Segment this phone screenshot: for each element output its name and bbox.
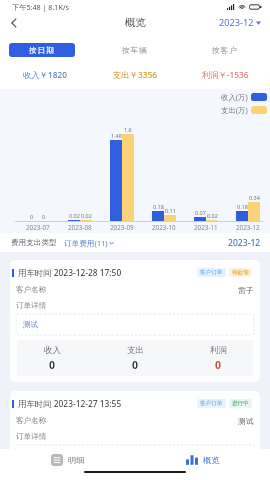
button[interactable]: 按日期 xyxy=(9,43,75,57)
staticText: 0.18 xyxy=(237,203,248,210)
staticText: 2023-10 xyxy=(152,223,176,232)
button[interactable]: Back xyxy=(0,14,27,31)
button[interactable]: 按车辆 xyxy=(90,43,180,57)
staticText: 0 xyxy=(42,213,46,220)
staticText: 按车辆 xyxy=(122,45,148,55)
staticText: 0 xyxy=(132,358,139,372)
staticText: 收入 xyxy=(44,345,61,356)
staticText: 订单费用(11) xyxy=(64,238,108,248)
staticText: 支出 xyxy=(127,345,144,356)
staticText: 待处理 xyxy=(232,269,249,276)
staticText: 0.07 xyxy=(195,209,206,216)
staticText: 2023-12 xyxy=(219,16,254,29)
button[interactable]: 明细 xyxy=(0,454,135,466)
staticText: 0 xyxy=(215,358,222,372)
button[interactable]: 订单费用(11) xyxy=(64,238,114,248)
button[interactable]: 概览 xyxy=(135,454,270,466)
staticText: 0.02 xyxy=(207,212,218,219)
staticText: 概览 xyxy=(125,16,146,29)
staticText: 0.02 xyxy=(69,212,80,219)
staticText: 2023-09 xyxy=(110,223,134,232)
staticText: 0.34 xyxy=(249,194,260,201)
staticText: 客户名称 xyxy=(16,416,47,426)
staticText: 利润 xyxy=(210,345,227,356)
staticText: 下午5:48 | 8.1K/s xyxy=(12,2,70,12)
staticText: 按客户 xyxy=(212,45,238,55)
staticText: 测试 xyxy=(238,416,254,426)
staticText: 2023-11 xyxy=(194,223,218,232)
button[interactable]: 用车时间 2023-12-28 17:50 xyxy=(10,260,260,382)
staticText: 客户订单 xyxy=(200,269,223,276)
staticText: 明细 xyxy=(68,455,85,465)
staticText: 收入(万) xyxy=(221,92,248,102)
button[interactable]: 按客户 xyxy=(180,43,270,57)
staticText: 客户订单 xyxy=(200,400,223,407)
staticText: 订单详情 xyxy=(16,432,47,442)
staticText: 订单详情 xyxy=(16,301,47,311)
staticText: 测试 xyxy=(23,320,39,330)
staticText: 用车时间 2023-12-28 17:50 xyxy=(18,267,122,278)
staticText: 0 xyxy=(49,358,56,372)
button[interactable]: 2023-12 xyxy=(219,16,261,29)
staticText: 支出(万) xyxy=(221,105,248,115)
staticText: 2023-12 xyxy=(236,223,260,232)
staticText: 用车时间 2023-12-27 13:55 xyxy=(18,398,122,409)
staticText: 概览 xyxy=(203,455,220,465)
staticText: 2023-07 xyxy=(26,223,50,232)
staticText: 支出￥3356 xyxy=(113,69,157,80)
staticText: 1.6 xyxy=(124,126,132,133)
staticText: 0.18 xyxy=(153,203,164,210)
staticText: 0.02 xyxy=(81,212,92,219)
staticText: 2023-08 xyxy=(68,223,92,232)
button[interactable]: 用车时间 2023-12-27 13:55 xyxy=(10,391,260,480)
staticText: 费用支出类型 xyxy=(11,238,57,248)
staticText: 雷子 xyxy=(238,285,254,295)
staticText: 进行中 xyxy=(232,400,249,407)
staticText: 利润￥-1536 xyxy=(202,69,249,80)
staticText: 2023-12 xyxy=(228,237,261,249)
staticText: 客户名称 xyxy=(16,285,47,295)
staticText: 0 xyxy=(30,213,34,220)
staticText: 0.11 xyxy=(165,207,176,214)
staticText: 1.48 xyxy=(111,132,122,139)
staticText: 收入￥1820 xyxy=(23,69,67,80)
staticText: 按日期 xyxy=(29,45,55,55)
